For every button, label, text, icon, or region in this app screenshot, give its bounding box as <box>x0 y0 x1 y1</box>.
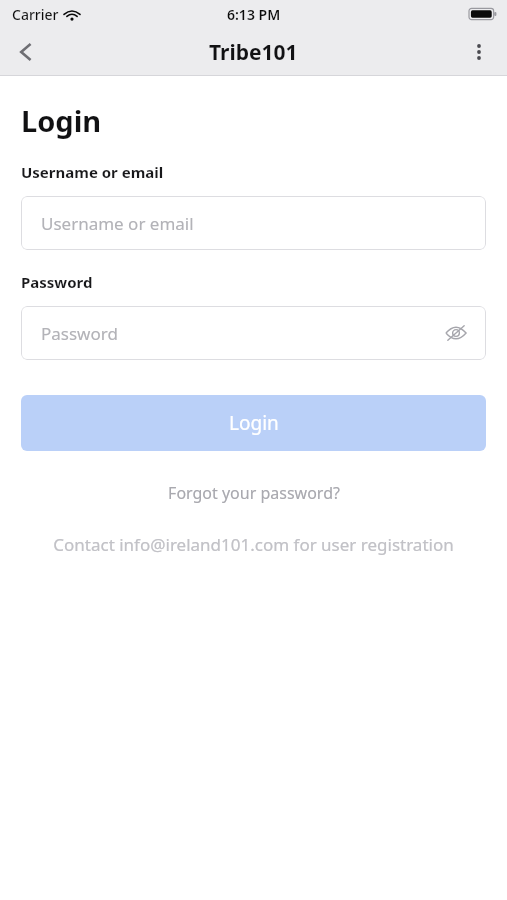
button[interactable]: Forgot your password? <box>0 476 507 510</box>
staticText: Forgot your password? <box>168 482 340 504</box>
staticText: Password <box>21 272 93 292</box>
staticText: 6:13 PM <box>227 5 281 24</box>
button[interactable]: Login <box>21 395 486 451</box>
staticText: Carrier <box>12 5 59 24</box>
button[interactable]: Back <box>4 30 48 74</box>
staticText: Username or email <box>21 162 164 182</box>
button[interactable]: Show password <box>439 316 473 350</box>
staticText: Password <box>41 322 118 345</box>
staticText: Login <box>21 101 102 140</box>
staticText: Login <box>229 410 279 436</box>
button[interactable]: More options <box>457 30 501 74</box>
button[interactable]: Username or email <box>21 196 486 250</box>
button[interactable]: Password <box>21 306 486 360</box>
staticText: Tribe101 <box>209 38 298 67</box>
staticText: Username or email <box>41 212 194 235</box>
staticText: Contact info@ireland101.com for user reg… <box>0 533 507 556</box>
